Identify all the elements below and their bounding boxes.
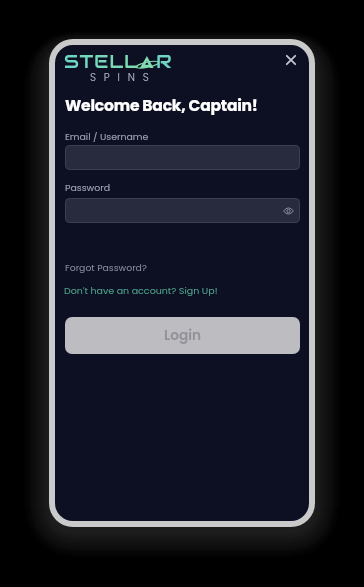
button[interactable]: Show password — [280, 203, 296, 219]
staticText: R — [156, 49, 173, 73]
staticText: Forgot Password? — [65, 261, 147, 274]
button[interactable]: Don't have an account? Sign Up! — [64, 284, 218, 297]
staticText: SPINS — [90, 70, 157, 85]
button[interactable]: Close — [280, 49, 302, 71]
staticText: Login — [164, 326, 202, 345]
staticText: STELL — [64, 49, 139, 73]
button[interactable]: Email or username — [65, 145, 300, 170]
staticText: Email / Username — [65, 130, 149, 143]
button[interactable]: Login — [65, 317, 300, 354]
button[interactable]: Forgot Password? — [65, 261, 147, 274]
button[interactable]: Password — [65, 198, 300, 223]
staticText: Don't have an account? Sign Up! — [64, 284, 218, 297]
staticText: Password — [65, 181, 111, 194]
staticText: Welcome Back, Captain! — [65, 95, 258, 117]
